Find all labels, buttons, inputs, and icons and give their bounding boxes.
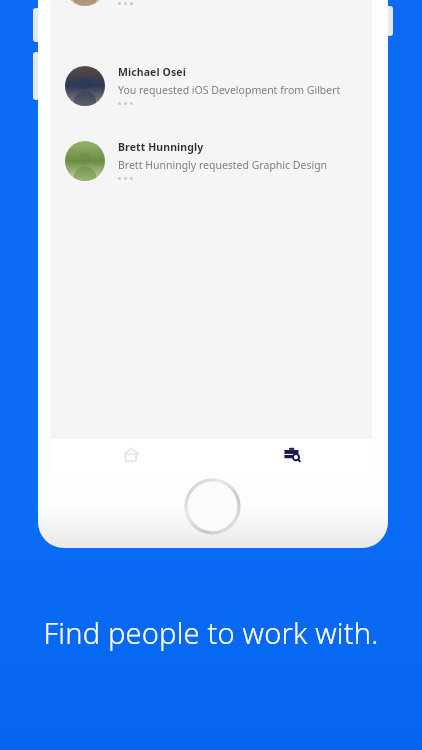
button[interactable]: Home xyxy=(50,437,211,472)
button[interactable]: Ashley Issacs xyxy=(50,0,372,30)
button[interactable]: Find jobs xyxy=(211,437,372,472)
staticText: You requested iOS Development from Gilbe… xyxy=(118,83,360,97)
staticText: Find people to work with. xyxy=(30,613,392,652)
staticText: Michael Osei xyxy=(118,65,186,79)
button[interactable]: Brett Hunningly xyxy=(50,133,372,205)
staticText: Brett Hunningly xyxy=(118,140,204,154)
staticText: Brett Hunningly requested Graphic Design xyxy=(118,158,328,172)
button[interactable]: Home button xyxy=(184,478,241,535)
button[interactable]: Michael Osei xyxy=(50,58,372,130)
